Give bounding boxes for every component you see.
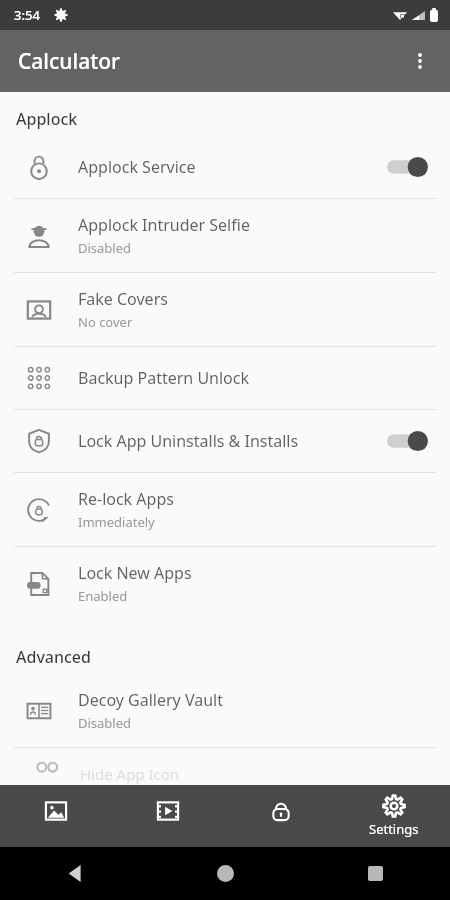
button[interactable]: Fake Covers [0,273,450,346]
staticText: 3:54 [14,6,40,24]
button[interactable]: Back [0,847,150,900]
staticText: Applock [16,108,78,130]
staticText: Enabled [78,587,128,605]
staticText: Disabled [78,239,132,257]
staticText: Backup Pattern Unlock [78,367,249,389]
button[interactable]: Decoy Gallery Vault [0,674,450,747]
staticText: Calculator [18,47,120,76]
button[interactable]: Lock App Uninstalls & Installs toggle [380,421,436,461]
staticText: Fake Covers [78,288,168,310]
button[interactable]: Home [150,847,300,900]
button[interactable]: Recent apps [300,847,450,900]
button[interactable]: More options [398,39,442,83]
button[interactable]: Settings [337,785,450,847]
button[interactable]: Gallery [0,785,112,847]
staticText: Applock Service [78,156,196,178]
staticText: Applock Intruder Selfie [78,214,250,236]
staticText: Lock New Apps [78,562,192,584]
button[interactable]: Vault [224,785,337,847]
staticText: Advanced [16,646,91,668]
button[interactable]: Re-lock Apps [0,473,450,546]
staticText: No cover [78,313,133,331]
button[interactable]: Backup Pattern Unlock [0,347,450,409]
button[interactable]: Applock Service toggle [380,147,436,187]
staticText: Immediately [78,513,155,531]
button[interactable]: Applock Intruder Selfie [0,199,450,272]
staticText: Decoy Gallery Vault [78,689,223,711]
staticText: Lock App Uninstalls & Installs [78,430,299,452]
staticText: Re-lock Apps [78,488,174,510]
button[interactable]: Videos [112,785,224,847]
button[interactable]: Lock App Uninstalls & Installs [0,410,450,472]
button[interactable]: Applock Service [0,136,450,198]
staticText: Settings [369,820,419,838]
staticText: Hide App Icon [80,764,180,784]
button[interactable]: Lock New Apps [0,547,450,620]
staticText: Disabled [78,714,132,732]
